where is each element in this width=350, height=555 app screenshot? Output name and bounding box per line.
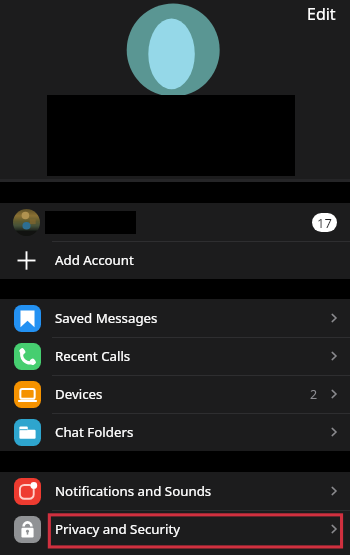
staticText: Add Account xyxy=(55,251,134,269)
staticText: Devices xyxy=(55,385,103,403)
staticText: Notifications and Sounds xyxy=(55,482,212,500)
button[interactable]: Notifications and Sounds xyxy=(0,472,350,510)
button[interactable]: Privacy and Security xyxy=(0,510,350,548)
staticText: Privacy and Security xyxy=(55,520,181,538)
staticText: 17 xyxy=(317,214,332,232)
button[interactable]: Add Account xyxy=(0,241,350,279)
staticText: Saved Messages xyxy=(55,309,158,327)
staticText: 2 xyxy=(310,386,318,403)
staticText: Recent Calls xyxy=(55,347,131,365)
button[interactable]: 17 xyxy=(0,203,350,241)
staticText: Chat Folders xyxy=(55,423,134,441)
button[interactable]: Chat Folders xyxy=(0,413,350,451)
button[interactable]: Recent Calls xyxy=(0,337,350,375)
button[interactable]: Devices xyxy=(0,375,350,413)
button[interactable]: Edit xyxy=(296,0,346,29)
button[interactable]: Saved Messages xyxy=(0,299,350,337)
staticText: Edit xyxy=(307,3,336,25)
